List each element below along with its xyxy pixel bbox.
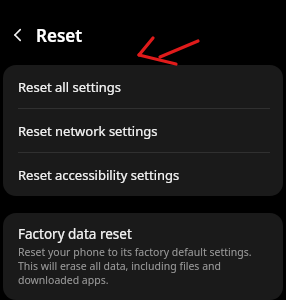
button[interactable]: Factory data reset bbox=[3, 213, 283, 300]
button[interactable]: Reset accessibility settings bbox=[3, 153, 283, 196]
button[interactable]: Reset network settings bbox=[3, 109, 283, 153]
button[interactable]: Reset all settings bbox=[3, 65, 283, 109]
staticText: Reset your phone to its factory default … bbox=[18, 245, 269, 286]
staticText: Reset bbox=[36, 24, 83, 47]
staticText: Reset accessibility settings bbox=[18, 166, 180, 184]
button[interactable]: Back bbox=[0, 17, 36, 53]
staticText: Reset network settings bbox=[18, 122, 158, 140]
staticText: Factory data reset bbox=[18, 225, 132, 243]
staticText: Reset all settings bbox=[18, 78, 121, 96]
